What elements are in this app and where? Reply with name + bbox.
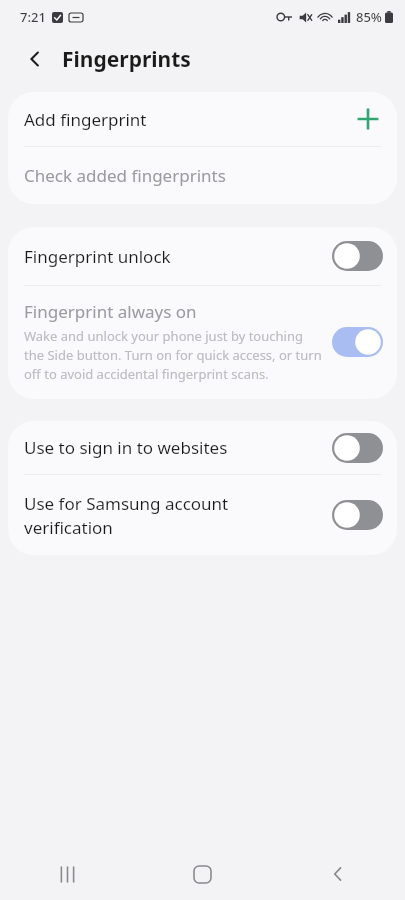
button[interactable]: Off: [332, 241, 383, 271]
button[interactable]: Home: [135, 848, 270, 900]
staticText: Fingerprints: [62, 45, 191, 74]
button[interactable]: Recents: [0, 848, 135, 900]
staticText: 85%: [356, 8, 382, 26]
button[interactable]: On: [332, 327, 383, 357]
staticText: Wake and unlock your phone just by touch…: [24, 327, 322, 383]
button[interactable]: Off: [332, 433, 383, 463]
button[interactable]: Back: [270, 848, 405, 900]
button[interactable]: Use to sign in to websites: [8, 421, 397, 474]
button[interactable]: Back: [18, 42, 52, 76]
staticText: Fingerprint unlock: [24, 245, 332, 268]
button[interactable]: Check added fingerprints: [8, 147, 397, 204]
staticText: 7:21: [20, 8, 46, 26]
staticText: Add fingerprint: [24, 108, 355, 131]
staticText: Check added fingerprints: [24, 164, 226, 187]
button[interactable]: Off: [332, 500, 383, 530]
button[interactable]: Add fingerprint: [8, 92, 397, 146]
staticText: Use for Samsung account verification: [24, 492, 318, 539]
button[interactable]: Use for Samsung account verification: [8, 475, 397, 555]
button[interactable]: Fingerprint unlock: [8, 227, 397, 285]
button[interactable]: Fingerprint always on: [8, 286, 397, 399]
staticText: Use to sign in to websites: [24, 436, 332, 459]
other: Add fingerprint: [355, 106, 381, 132]
staticText: Fingerprint always on: [24, 300, 197, 323]
